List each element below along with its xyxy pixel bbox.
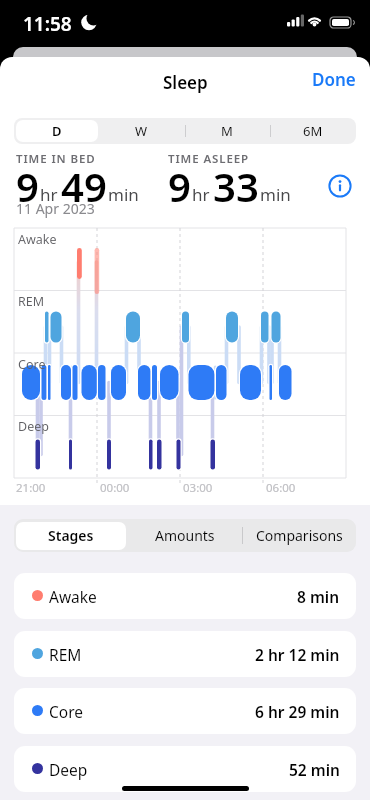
button[interactable]: Comparisons (242, 519, 356, 552)
staticText: 9 (168, 159, 191, 213)
button[interactable]: Core (14, 688, 356, 734)
staticText: Deep (18, 418, 49, 435)
staticText: Core (49, 701, 84, 722)
staticText: Done (312, 68, 356, 91)
staticText: REM (49, 644, 82, 665)
staticText: Core (18, 356, 46, 373)
staticText: hr (40, 183, 58, 206)
staticText: 6M (303, 122, 323, 140)
button[interactable]: Done (296, 63, 356, 95)
staticText: Amounts (155, 526, 215, 545)
staticText: Deep (49, 759, 88, 780)
staticText: 8 min (297, 586, 340, 607)
staticText: Awake (18, 231, 57, 248)
staticText: Awake (49, 586, 97, 607)
staticText: 21:00 (16, 480, 46, 496)
staticText: 2 hr 12 min (255, 644, 340, 665)
staticText: TIME ASLEEP (168, 151, 250, 167)
staticText: 9 (16, 159, 39, 213)
staticText: 11 Apr 2023 (16, 199, 95, 218)
button[interactable]: D (14, 118, 99, 144)
button[interactable]: M (184, 118, 270, 144)
button[interactable]: Stages (14, 519, 128, 552)
button[interactable]: Amounts (128, 519, 242, 552)
button[interactable]: Awake (14, 573, 356, 619)
staticText: hr (192, 183, 210, 206)
staticText: 03:00 (183, 480, 213, 496)
button[interactable] (329, 175, 351, 197)
staticText: 52 min (289, 759, 340, 780)
staticText: 33 (213, 159, 259, 213)
staticText: 06:00 (266, 480, 296, 496)
staticText: min (260, 183, 291, 206)
staticText: 49 (61, 159, 107, 213)
button[interactable]: W (99, 118, 184, 144)
staticText: TIME IN BED (16, 151, 96, 167)
button[interactable]: 6M (270, 118, 356, 144)
staticText: 00:00 (100, 480, 130, 496)
staticText: min (108, 183, 139, 206)
button[interactable]: REM (14, 631, 356, 677)
staticText: Sleep (163, 71, 208, 94)
staticText: Stages (48, 526, 94, 545)
staticText: 6 hr 29 min (255, 701, 340, 722)
staticText: D (52, 122, 62, 140)
staticText: Comparisons (256, 526, 343, 545)
button[interactable]: Deep (14, 746, 356, 792)
staticText: 11:58 (23, 11, 72, 37)
staticText: M (221, 122, 233, 140)
staticText: REM (18, 293, 45, 310)
staticText: W (135, 122, 148, 140)
